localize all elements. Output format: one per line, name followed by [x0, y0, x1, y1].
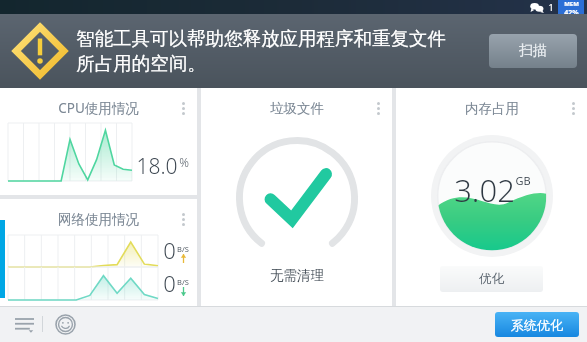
button[interactable]: 系统优化: [495, 312, 579, 337]
button[interactable]: 网络使用情况: [0, 199, 197, 306]
staticText: MEM: [564, 0, 579, 8]
staticText: 18.0: [136, 152, 178, 181]
staticText: 所占用的空间。: [76, 52, 206, 75]
button[interactable]: CPU使用情况: [0, 88, 197, 195]
staticText: 扫描: [519, 42, 547, 60]
staticText: 系统优化: [511, 317, 563, 333]
button[interactable]: 优化: [440, 266, 543, 292]
button[interactable]: 垃圾文件: [201, 88, 392, 306]
button[interactable]: Menu: [10, 310, 38, 338]
button[interactable]: More options: [371, 101, 385, 115]
staticText: CPU使用情况: [58, 99, 139, 117]
staticText: 优化: [479, 271, 504, 287]
staticText: GB: [515, 173, 531, 188]
staticText: 42%: [564, 8, 579, 14]
staticText: B/S: [177, 244, 189, 254]
staticText: 0: [163, 235, 176, 265]
staticText: 无需清理: [270, 267, 324, 284]
button[interactable]: Support: [51, 310, 79, 338]
staticText: %: [179, 154, 189, 170]
staticText: 垃圾文件: [270, 100, 324, 117]
button[interactable]: More options: [176, 212, 190, 226]
staticText: 内存占用: [465, 100, 519, 117]
button[interactable]: 扫描: [489, 34, 577, 68]
staticText: 0: [163, 268, 176, 298]
staticText: 3.02: [454, 169, 515, 211]
staticText: 1: [548, 1, 554, 13]
button[interactable]: More options: [176, 101, 190, 115]
staticText: 网络使用情况: [58, 211, 139, 228]
staticText: B/S: [177, 277, 189, 287]
staticText: 智能工具可以帮助您释放应用程序和重复文件: [76, 27, 446, 50]
button[interactable]: More options: [566, 101, 580, 115]
button[interactable]: 内存占用: [396, 88, 587, 306]
